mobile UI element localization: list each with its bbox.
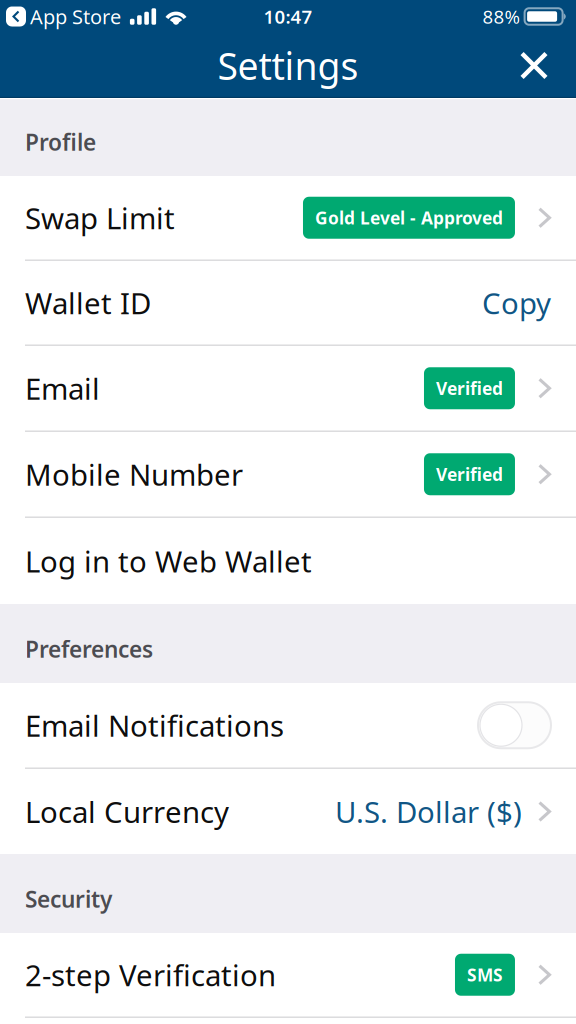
button[interactable]: Email (0, 346, 576, 430)
button[interactable]: Email Notifications (0, 683, 576, 767)
staticText: Copy (482, 283, 551, 322)
staticText: SMS (467, 963, 503, 986)
staticText: Log in to Web Wallet (25, 541, 312, 580)
button[interactable]: Email Notifications (478, 702, 551, 748)
staticText: 10:47 (263, 4, 312, 29)
staticText: Local Currency (25, 792, 229, 831)
button[interactable]: Back to App Store (6, 6, 26, 26)
staticText: Settings (217, 41, 358, 90)
staticText: Profile (25, 127, 96, 157)
staticText: 2-step Verification (25, 955, 276, 994)
button[interactable]: 2-step Verification (0, 933, 576, 1016)
staticText: Mobile Number (25, 455, 243, 494)
staticText: App Store (30, 3, 121, 30)
staticText: Security (25, 884, 112, 914)
staticText: Wallet ID (25, 283, 151, 322)
staticText: Email (25, 369, 100, 408)
button[interactable]: Wallet ID (0, 261, 576, 344)
staticText: 88% (483, 4, 521, 29)
button[interactable]: Close (506, 33, 562, 98)
staticText: U.S. Dollar ($) (335, 792, 522, 831)
staticText: Verified (436, 377, 503, 400)
button[interactable]: Swap Limit (0, 176, 576, 259)
button[interactable]: Mobile Number (0, 432, 576, 516)
staticText: Email Notifications (25, 706, 284, 745)
staticText: Gold Level - Approved (315, 206, 503, 229)
staticText: Verified (436, 463, 503, 486)
staticText: Preferences (25, 634, 153, 664)
button[interactable]: Local Currency (0, 769, 576, 854)
staticText: Swap Limit (25, 198, 175, 237)
button[interactable]: Log in to Web Wallet (0, 518, 576, 604)
